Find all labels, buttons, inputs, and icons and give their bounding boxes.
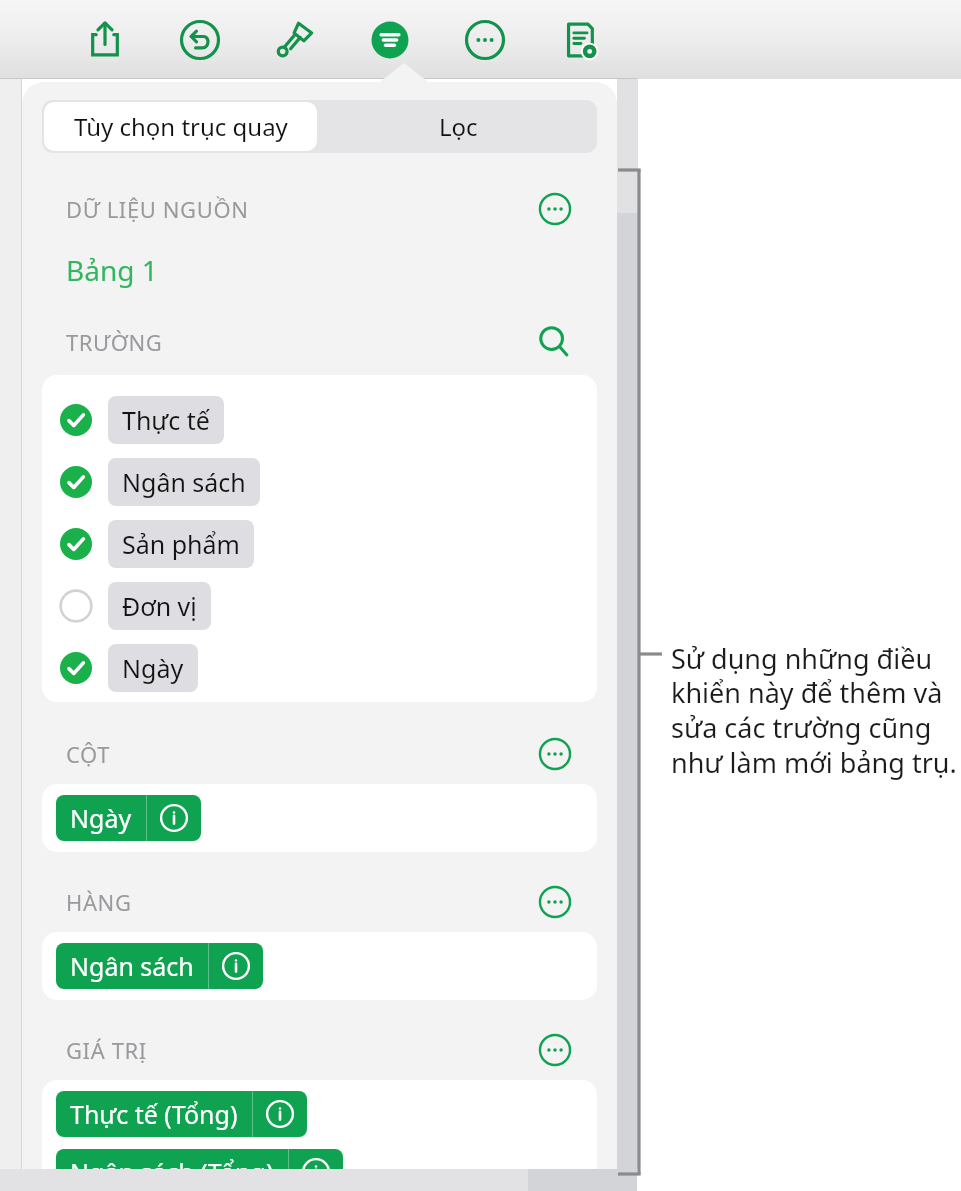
staticText: Thực tế (Tổng) xyxy=(70,1097,238,1131)
staticText: Ngân sách xyxy=(122,465,246,499)
button[interactable]: Ngày xyxy=(42,637,597,699)
button[interactable]: Thực tế xyxy=(42,389,597,451)
button[interactable]: Ngân sách xyxy=(42,451,597,513)
button[interactable]: Đơn vị xyxy=(42,575,597,637)
button[interactable]: Lọc xyxy=(319,100,597,153)
button[interactable]: Ngày xyxy=(56,795,201,841)
button[interactable]: Column options xyxy=(535,734,575,774)
staticText: CỘT xyxy=(66,739,111,769)
staticText: Ngân sách (Tổng) xyxy=(70,1155,274,1189)
button[interactable]: Sản phẩm xyxy=(42,513,597,575)
button[interactable]: Search xyxy=(533,321,575,363)
button[interactable]: Ngân sách xyxy=(56,943,263,989)
button[interactable]: Row options xyxy=(535,882,575,922)
other: Info xyxy=(289,1149,343,1191)
staticText: Thực tế xyxy=(122,403,210,437)
other: Info xyxy=(253,1091,307,1137)
button[interactable]: Ngân sách (Tổng) xyxy=(56,1149,343,1191)
button[interactable]: Undo xyxy=(171,11,229,69)
button[interactable]: Share xyxy=(76,11,134,69)
button[interactable]: Document options xyxy=(551,11,609,69)
button[interactable]: Bảng 1 xyxy=(66,251,158,289)
button[interactable]: Value options xyxy=(535,1030,575,1070)
staticText: DỮ LIỆU NGUỒN xyxy=(66,194,249,224)
staticText: HÀNG xyxy=(66,887,132,917)
staticText: Ngày xyxy=(122,651,184,685)
staticText: Sản phẩm xyxy=(122,527,240,561)
staticText: Tùy chọn trục quay xyxy=(74,110,288,143)
button[interactable]: Source data options xyxy=(535,189,575,229)
button[interactable]: More options xyxy=(456,11,514,69)
other: Info xyxy=(209,943,263,989)
button[interactable]: Tùy chọn trục quay xyxy=(44,102,317,151)
staticText: Lọc xyxy=(439,110,478,143)
staticText: Ngân sách xyxy=(70,949,194,983)
other: Info xyxy=(147,795,201,841)
staticText: Sử dụng những điều khiển này để thêm và … xyxy=(671,640,961,781)
button[interactable]: Filter xyxy=(361,11,419,69)
button[interactable]: Format xyxy=(266,11,324,69)
staticText: Ngày xyxy=(70,801,132,835)
staticText: Đơn vị xyxy=(122,589,197,623)
staticText: TRƯỜNG xyxy=(66,327,163,357)
staticText: GIÁ TRỊ xyxy=(66,1035,147,1065)
button[interactable]: Thực tế (Tổng) xyxy=(56,1091,307,1137)
